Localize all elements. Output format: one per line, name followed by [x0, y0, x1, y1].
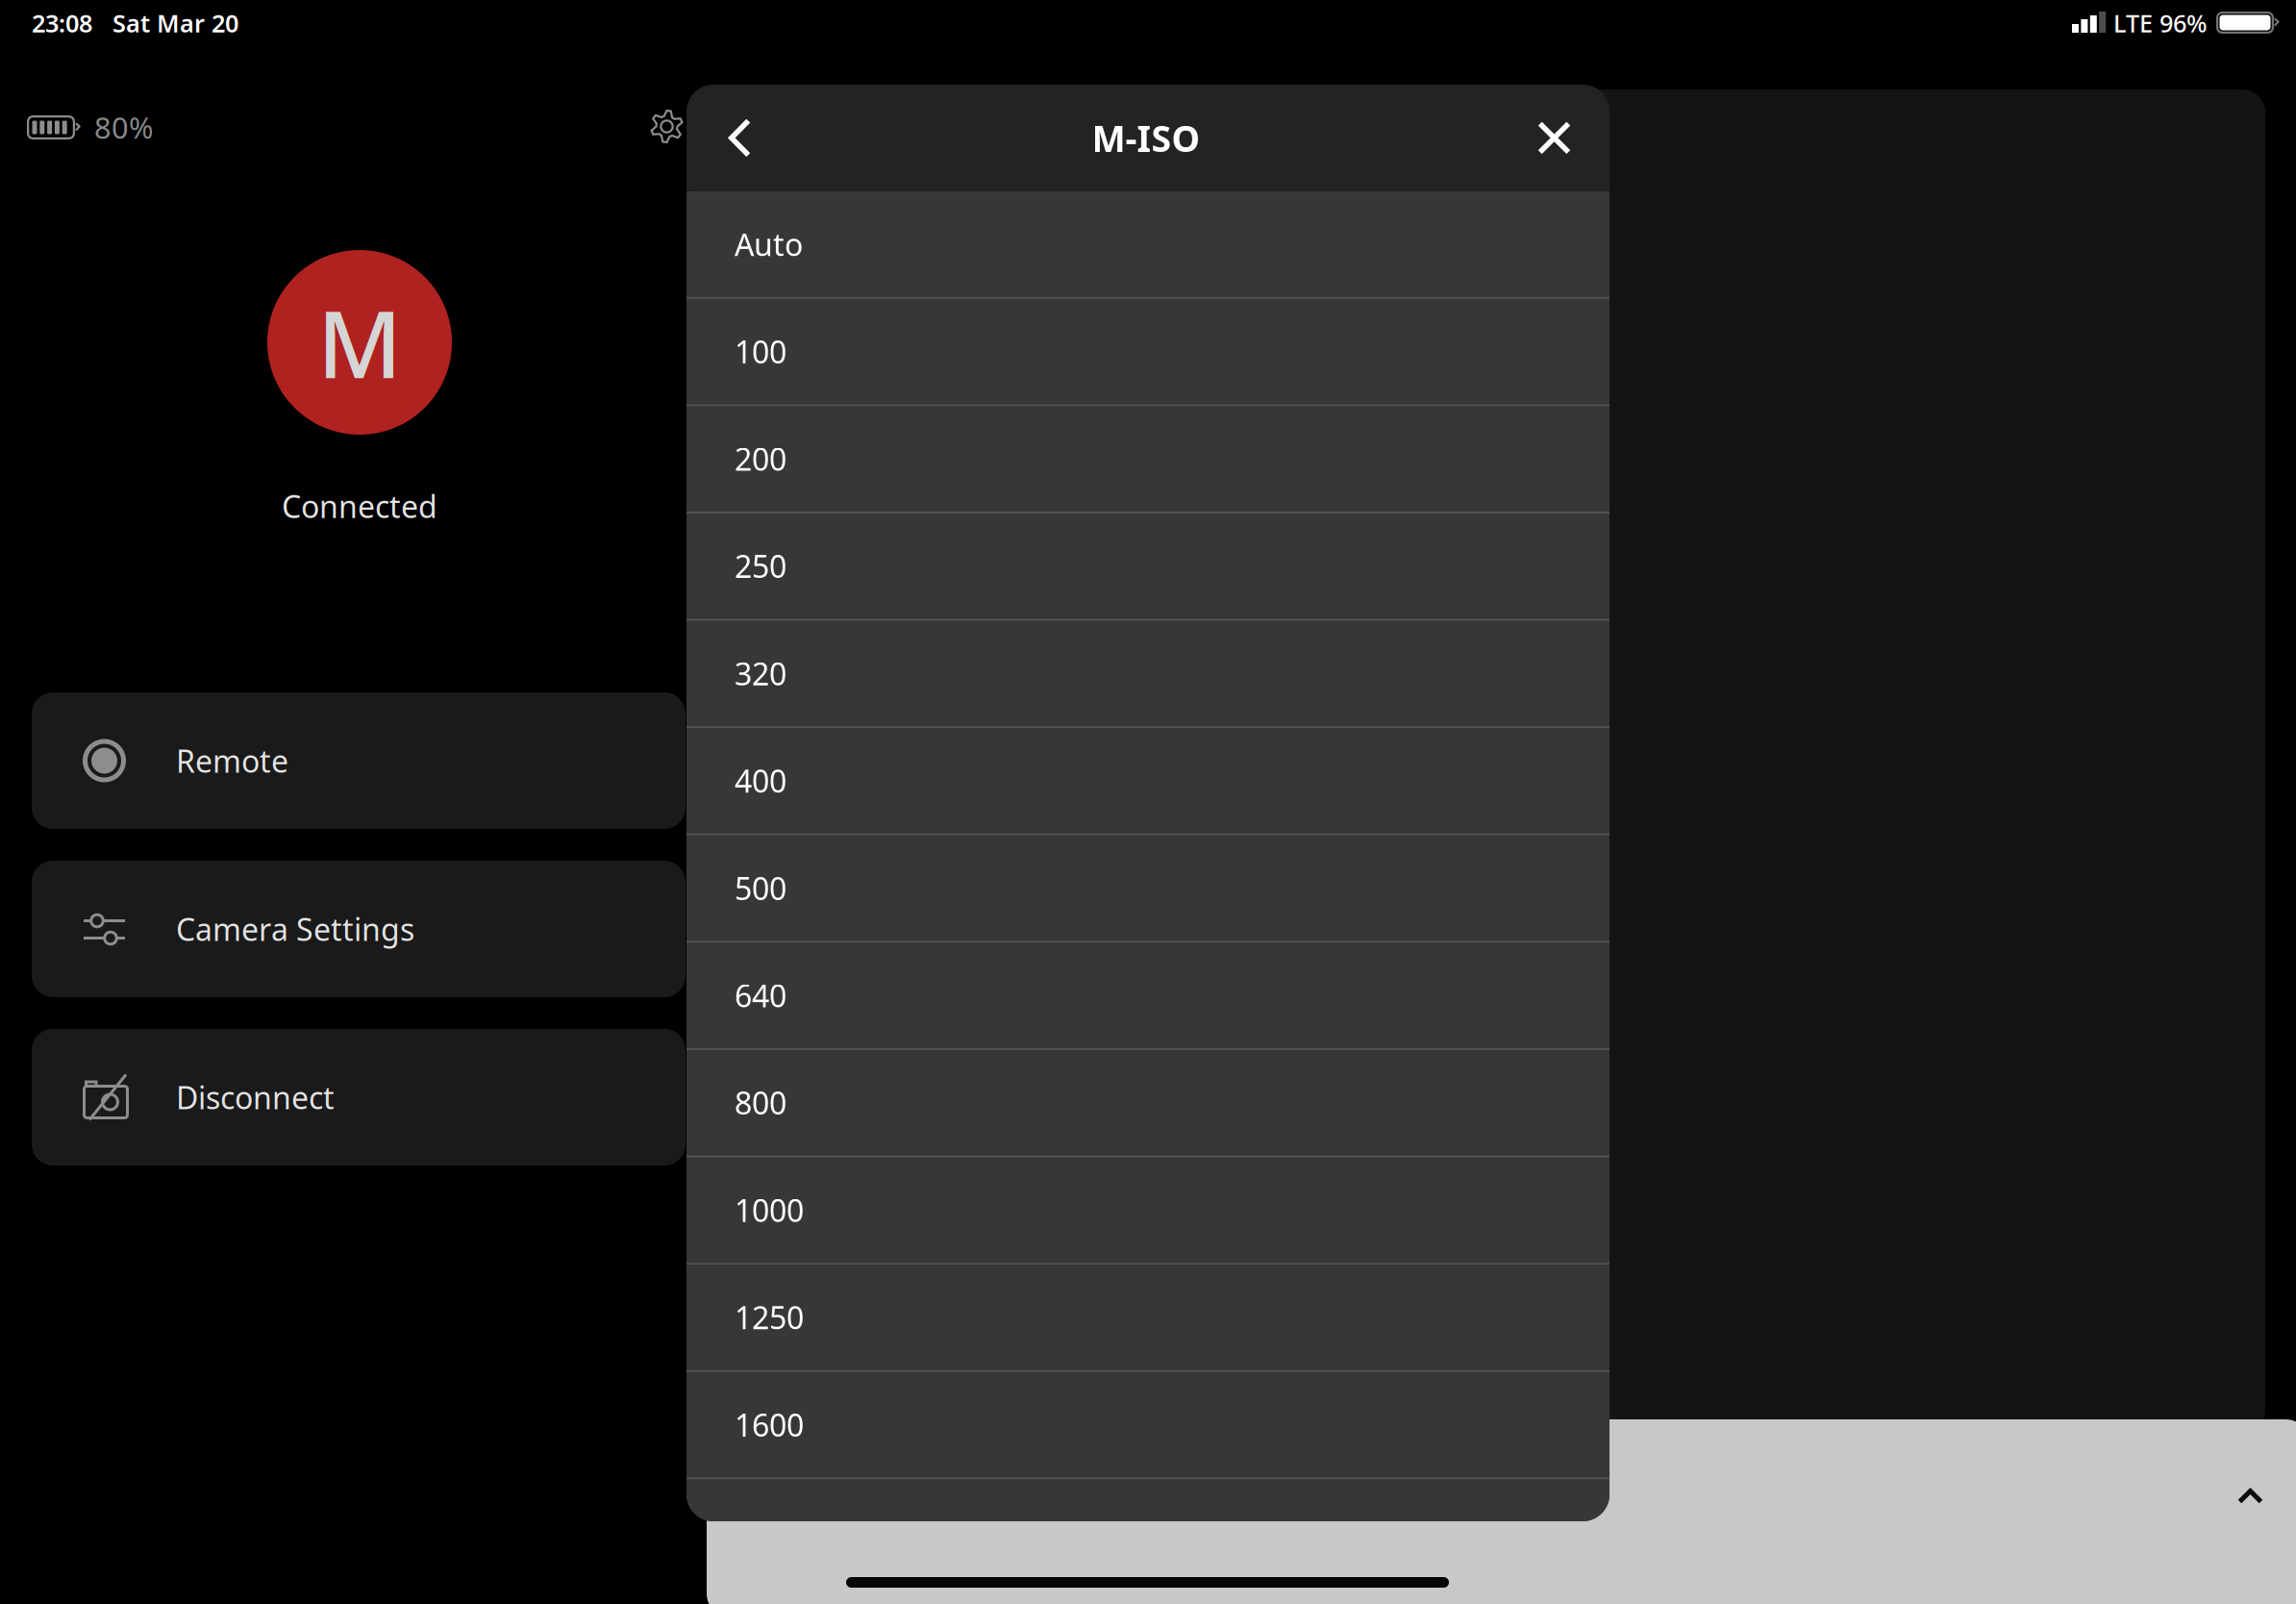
staticText: 200: [735, 438, 786, 479]
button[interactable]: 1250: [686, 1264, 1610, 1370]
button[interactable]: Remote: [32, 692, 686, 829]
staticText: 100: [735, 331, 786, 372]
button[interactable]: 200: [686, 406, 1610, 512]
staticText: Remote: [176, 740, 288, 781]
button[interactable]: 800: [686, 1050, 1610, 1156]
staticText: LTE 96%: [2113, 7, 2208, 39]
staticText: 640: [735, 975, 786, 1016]
button[interactable]: Settings: [650, 110, 684, 143]
button[interactable]: Expand: [2237, 1489, 2263, 1504]
button[interactable]: Camera Settings: [32, 861, 686, 997]
staticText: M-ISO: [1092, 114, 1200, 162]
staticText: 23:08 Sat Mar 20: [32, 7, 238, 39]
button[interactable]: 100: [686, 299, 1610, 404]
staticText: Connected: [282, 486, 437, 526]
staticText: 1250: [735, 1297, 804, 1338]
button[interactable]: 320: [686, 621, 1610, 726]
staticText: 1000: [735, 1190, 804, 1231]
staticText: 500: [735, 868, 786, 909]
staticText: 80%: [94, 108, 153, 147]
staticText: Camera Settings: [176, 909, 414, 949]
button[interactable]: 1000: [686, 1157, 1610, 1263]
button[interactable]: Auto: [686, 191, 1610, 297]
staticText: 320: [735, 653, 786, 694]
staticText: Disconnect: [176, 1077, 335, 1118]
staticText: M: [317, 281, 402, 404]
button[interactable]: Disconnect: [32, 1029, 686, 1165]
staticText: 400: [735, 760, 786, 801]
button[interactable]: 250: [686, 513, 1610, 619]
staticText: Auto: [735, 224, 803, 265]
button[interactable]: Back: [686, 85, 793, 191]
button[interactable]: 640: [686, 942, 1610, 1048]
button[interactable]: 400: [686, 728, 1610, 834]
staticText: 250: [735, 546, 786, 587]
button[interactable]: 1600: [686, 1372, 1610, 1478]
button[interactable]: 500: [686, 835, 1610, 941]
button[interactable]: Close: [1499, 85, 1610, 191]
staticText: 1600: [735, 1404, 804, 1445]
staticText: 800: [735, 1082, 786, 1123]
